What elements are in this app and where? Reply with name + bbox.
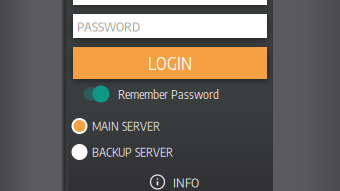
button[interactable]: INFO xyxy=(150,172,270,191)
staticText: BACKUP SERVER xyxy=(92,144,173,159)
button[interactable]: BACKUP SERVER xyxy=(71,143,265,161)
staticText: MAIN SERVER xyxy=(92,118,160,133)
button[interactable]: Remember Password xyxy=(83,84,257,104)
button[interactable]: MAIN SERVER xyxy=(71,117,265,135)
staticText: LOGIN xyxy=(148,52,192,74)
staticText: Remember Password xyxy=(118,86,219,102)
staticText: INFO xyxy=(173,174,199,190)
button[interactable]: LOGIN xyxy=(73,47,267,79)
staticText: PASSWORD xyxy=(77,18,140,34)
